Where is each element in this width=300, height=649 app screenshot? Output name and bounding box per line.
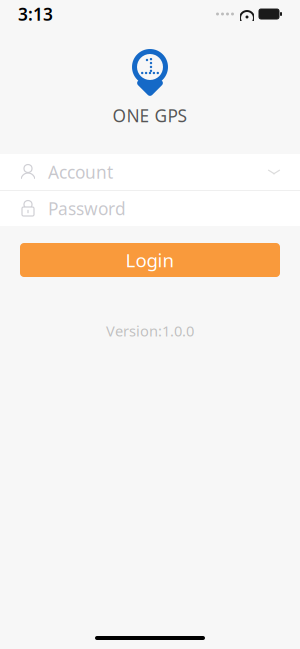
staticText: Account: [48, 160, 113, 183]
button[interactable]: Login: [20, 243, 280, 277]
staticText: Login: [125, 248, 174, 272]
button[interactable]: Password: [0, 191, 300, 226]
staticText: ONE GPS: [112, 104, 187, 127]
button[interactable]: Account: [0, 154, 300, 190]
staticText: Password: [48, 197, 126, 220]
staticText: Version:1.0.0: [106, 321, 194, 340]
staticText: 3:13: [18, 2, 53, 25]
